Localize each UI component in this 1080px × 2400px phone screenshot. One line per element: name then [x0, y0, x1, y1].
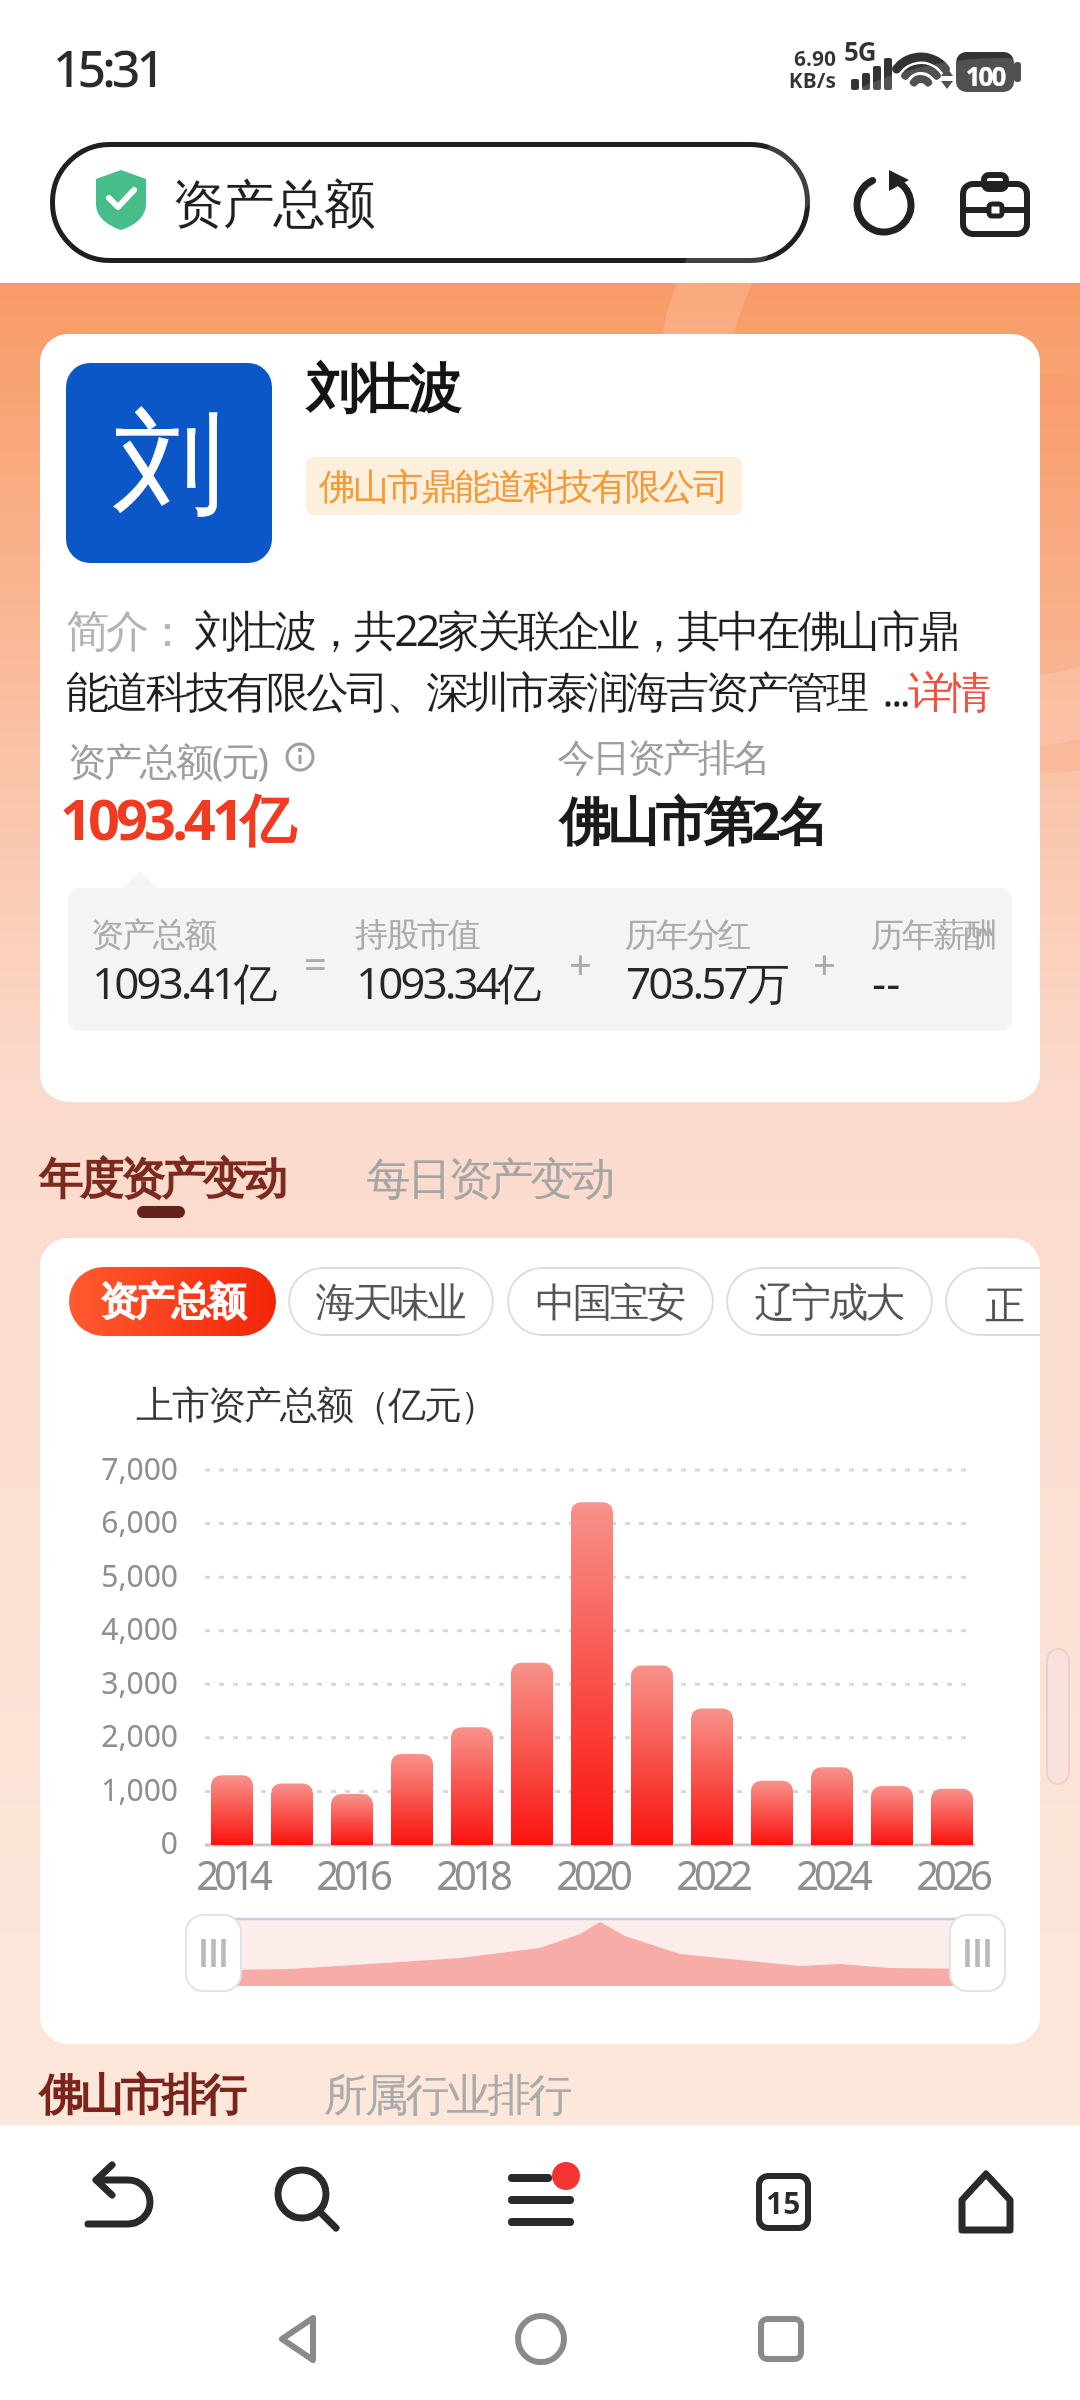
- button[interactable]: [270, 2310, 330, 2370]
- staticText: 刘: [113, 393, 225, 534]
- staticText: 2024: [772, 1847, 892, 1901]
- staticText: 辽宁成大: [756, 1277, 904, 1327]
- button[interactable]: [511, 2310, 571, 2370]
- staticText: 正: [985, 1280, 1025, 1330]
- staticText: 佛山市第2名: [559, 784, 825, 855]
- button[interactable]: 辽宁成大: [726, 1267, 933, 1336]
- staticText: 简介： 刘壮波，共22家关联企业，其中在佛山市鼎: [66, 600, 958, 659]
- staticText: +: [569, 936, 592, 990]
- staticText: 5G: [844, 33, 876, 68]
- staticText: =: [304, 936, 327, 990]
- staticText: 资产总额: [101, 1277, 245, 1326]
- staticText: 3,000: [58, 1662, 178, 1703]
- staticText: --: [872, 952, 901, 1012]
- button[interactable]: [751, 2310, 811, 2370]
- button[interactable]: 中国宝安: [507, 1267, 714, 1336]
- staticText: 0: [58, 1822, 178, 1863]
- button[interactable]: 海天味业: [288, 1267, 494, 1336]
- staticText: 2014: [172, 1847, 292, 1901]
- button[interactable]: [950, 2150, 1022, 2250]
- staticText: 703.57万: [626, 952, 787, 1012]
- staticText: 100: [956, 58, 1014, 93]
- staticText: 1093.41亿: [60, 780, 292, 856]
- staticText: 上市资产总额（亿元）: [137, 1381, 497, 1429]
- staticText: 能道科技有限公司、深圳市泰润海吉资产管理 ...详情: [66, 661, 988, 720]
- button[interactable]: 佛山市鼎能道科技有限公司: [306, 457, 742, 515]
- staticText: 历年分红: [626, 914, 750, 956]
- staticText: 5,000: [58, 1555, 178, 1596]
- staticText: 6.90 KB/s: [780, 44, 836, 94]
- button[interactable]: [70, 2150, 142, 2250]
- staticText: 1093.34亿: [356, 952, 539, 1012]
- staticText: 15:31: [53, 34, 161, 102]
- button[interactable]: [960, 172, 1030, 238]
- staticText: 2018: [412, 1847, 532, 1901]
- staticText: 2016: [292, 1847, 412, 1901]
- staticText: 所属行业排行: [325, 2068, 571, 2123]
- staticText: 6,000: [58, 1501, 178, 1542]
- staticText: 中国宝安: [537, 1277, 685, 1327]
- staticText: 2,000: [58, 1715, 178, 1756]
- staticText: 今日资产排名: [559, 734, 769, 782]
- staticText: 资产总额: [92, 914, 216, 956]
- staticText: 历年薪酬: [872, 914, 996, 956]
- button[interactable]: 正: [945, 1267, 1040, 1336]
- button[interactable]: 资产总额: [50, 142, 810, 263]
- button[interactable]: 刘: [66, 363, 272, 563]
- button[interactable]: [851, 170, 919, 238]
- staticText: 刘壮波: [307, 356, 460, 423]
- staticText: 资产总额(元): [68, 734, 267, 786]
- button[interactable]: 资产总额: [69, 1267, 276, 1336]
- button[interactable]: [272, 2150, 344, 2250]
- staticText: +: [813, 936, 836, 990]
- staticText: 1,000: [58, 1769, 178, 1810]
- staticText: 持股市值: [356, 914, 480, 956]
- staticText: 2026: [892, 1847, 1012, 1901]
- button[interactable]: [505, 2150, 595, 2250]
- staticText: 每日资产变动: [368, 1152, 614, 1207]
- staticText: 4,000: [58, 1608, 178, 1649]
- staticText: 年度资产变动: [40, 1152, 286, 1207]
- staticText: 15: [766, 2182, 801, 2223]
- staticText: 7,000: [58, 1448, 178, 1489]
- staticText: 2022: [652, 1847, 772, 1901]
- button[interactable]: 15: [756, 2173, 811, 2231]
- staticText: 海天味业: [317, 1277, 465, 1327]
- staticText: 佛山市鼎能道科技有限公司: [320, 464, 728, 509]
- staticText: 佛山市排行: [40, 2068, 245, 2123]
- staticText: 2020: [532, 1847, 652, 1901]
- staticText: 资产总额: [173, 172, 375, 238]
- staticText: 1093.41亿: [92, 952, 275, 1012]
